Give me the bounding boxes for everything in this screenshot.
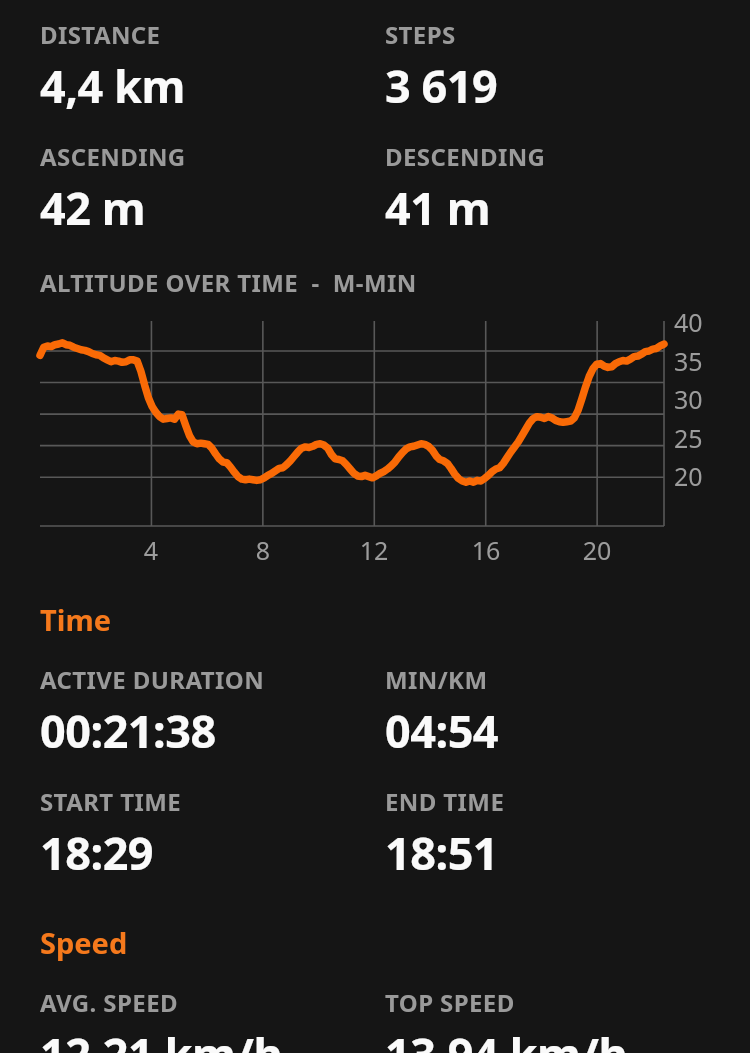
button[interactable]: TOP SPEED: [385, 986, 750, 1053]
staticText: 12: [344, 533, 404, 567]
staticText: START TIME: [40, 785, 182, 818]
staticText: 18:29: [40, 822, 154, 883]
button[interactable]: STEPS: [385, 18, 750, 116]
staticText: TOP SPEED: [385, 986, 515, 1019]
button[interactable]: Speed: [40, 923, 128, 962]
button[interactable]: ACTIVE DURATION: [40, 663, 385, 761]
staticText: STEPS: [385, 18, 456, 51]
button[interactable]: DESCENDING: [385, 140, 750, 238]
other: Workout summary: [0, 0, 750, 1053]
staticText: 30: [674, 382, 703, 416]
staticText: 40: [674, 305, 703, 339]
staticText: Speed: [40, 923, 128, 962]
staticText: ACTIVE DURATION: [40, 663, 265, 696]
staticText: 20: [567, 533, 627, 567]
staticText: 42 m: [40, 177, 146, 238]
staticText: 25: [674, 421, 703, 455]
staticText: 04:54: [385, 700, 499, 761]
staticText: 41 m: [385, 177, 491, 238]
staticText: 35: [674, 344, 703, 378]
staticText: 18:51: [385, 822, 499, 883]
staticText: 20: [674, 459, 703, 493]
button[interactable]: MIN/KM: [385, 663, 750, 761]
staticText: 8: [233, 533, 293, 567]
button[interactable]: Time: [40, 600, 111, 639]
staticText: AVG. SPEED: [40, 986, 178, 1019]
staticText: 4: [121, 533, 181, 567]
staticText: END TIME: [385, 785, 505, 818]
staticText: 4,4 km: [40, 55, 185, 116]
staticText: 00:21:38: [40, 700, 216, 761]
staticText: DESCENDING: [385, 140, 546, 173]
staticText: ASCENDING: [40, 140, 186, 173]
button[interactable]: AVG. SPEED: [40, 986, 385, 1053]
staticText: 16: [456, 533, 516, 567]
button[interactable]: START TIME: [40, 785, 385, 883]
staticText: 12,21 km/h: [40, 1023, 283, 1053]
staticText: Time: [40, 600, 111, 639]
staticText: 3 619: [385, 55, 498, 116]
staticText: MIN/KM: [385, 663, 488, 696]
staticText: DISTANCE: [40, 18, 161, 51]
staticText: ALTITUDE OVER TIME - M-MIN: [40, 266, 417, 299]
button[interactable]: ASCENDING: [40, 140, 385, 238]
button[interactable]: DISTANCE: [40, 18, 385, 116]
staticText: 13,94 km/h: [385, 1023, 628, 1053]
button[interactable]: END TIME: [385, 785, 750, 883]
